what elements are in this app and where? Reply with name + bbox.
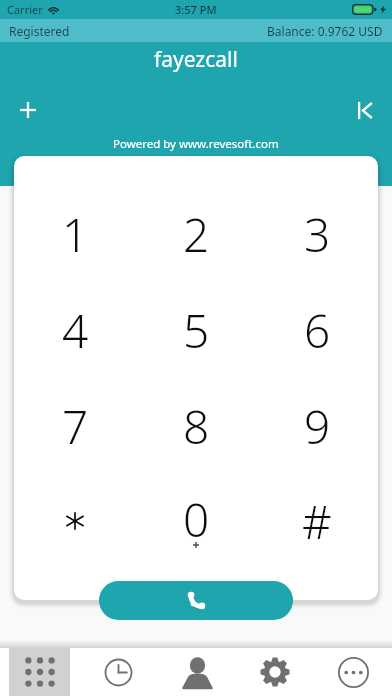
button[interactable]: 2	[138, 189, 254, 279]
button[interactable]: 7	[17, 381, 133, 471]
button[interactable]: 1	[17, 189, 133, 279]
staticText: 3:57 PM	[175, 2, 217, 17]
button[interactable]: 6	[259, 285, 375, 375]
staticText: 6	[304, 299, 331, 362]
button[interactable]: 4	[17, 285, 133, 375]
button[interactable]: Contacts	[158, 648, 236, 696]
staticText: 4	[62, 299, 89, 362]
button[interactable]: Call	[99, 581, 293, 620]
button[interactable]: Recents	[79, 648, 158, 696]
button[interactable]: Add contact	[10, 92, 46, 128]
button[interactable]: Keypad	[9, 648, 70, 696]
staticText: Powered by www.revesoft.com	[113, 136, 279, 152]
staticText: 5	[183, 299, 210, 362]
button[interactable]: 0	[138, 476, 254, 566]
staticText: Registered	[9, 23, 70, 39]
button[interactable]: More	[314, 648, 392, 696]
staticText: 2	[183, 203, 210, 266]
button[interactable]: 5	[138, 285, 254, 375]
staticText: 1	[62, 203, 89, 266]
staticText: Carrier	[7, 2, 43, 17]
staticText: Balance: 0.9762 USD	[267, 23, 383, 39]
button[interactable]: 3	[259, 189, 375, 279]
staticText: 0	[183, 488, 210, 551]
button[interactable]: #	[259, 476, 375, 566]
staticText: 7	[62, 395, 89, 458]
staticText: fayezcall	[154, 45, 238, 74]
staticText: 3	[304, 203, 331, 266]
button[interactable]: Backspace	[347, 92, 383, 128]
button[interactable]	[17, 476, 133, 566]
staticText: 8	[183, 395, 210, 458]
button[interactable]: 8	[138, 381, 254, 471]
staticText: 9	[304, 395, 331, 458]
button[interactable]: 9	[259, 381, 375, 471]
staticText: #	[302, 490, 332, 553]
button[interactable]: Settings	[236, 648, 314, 696]
